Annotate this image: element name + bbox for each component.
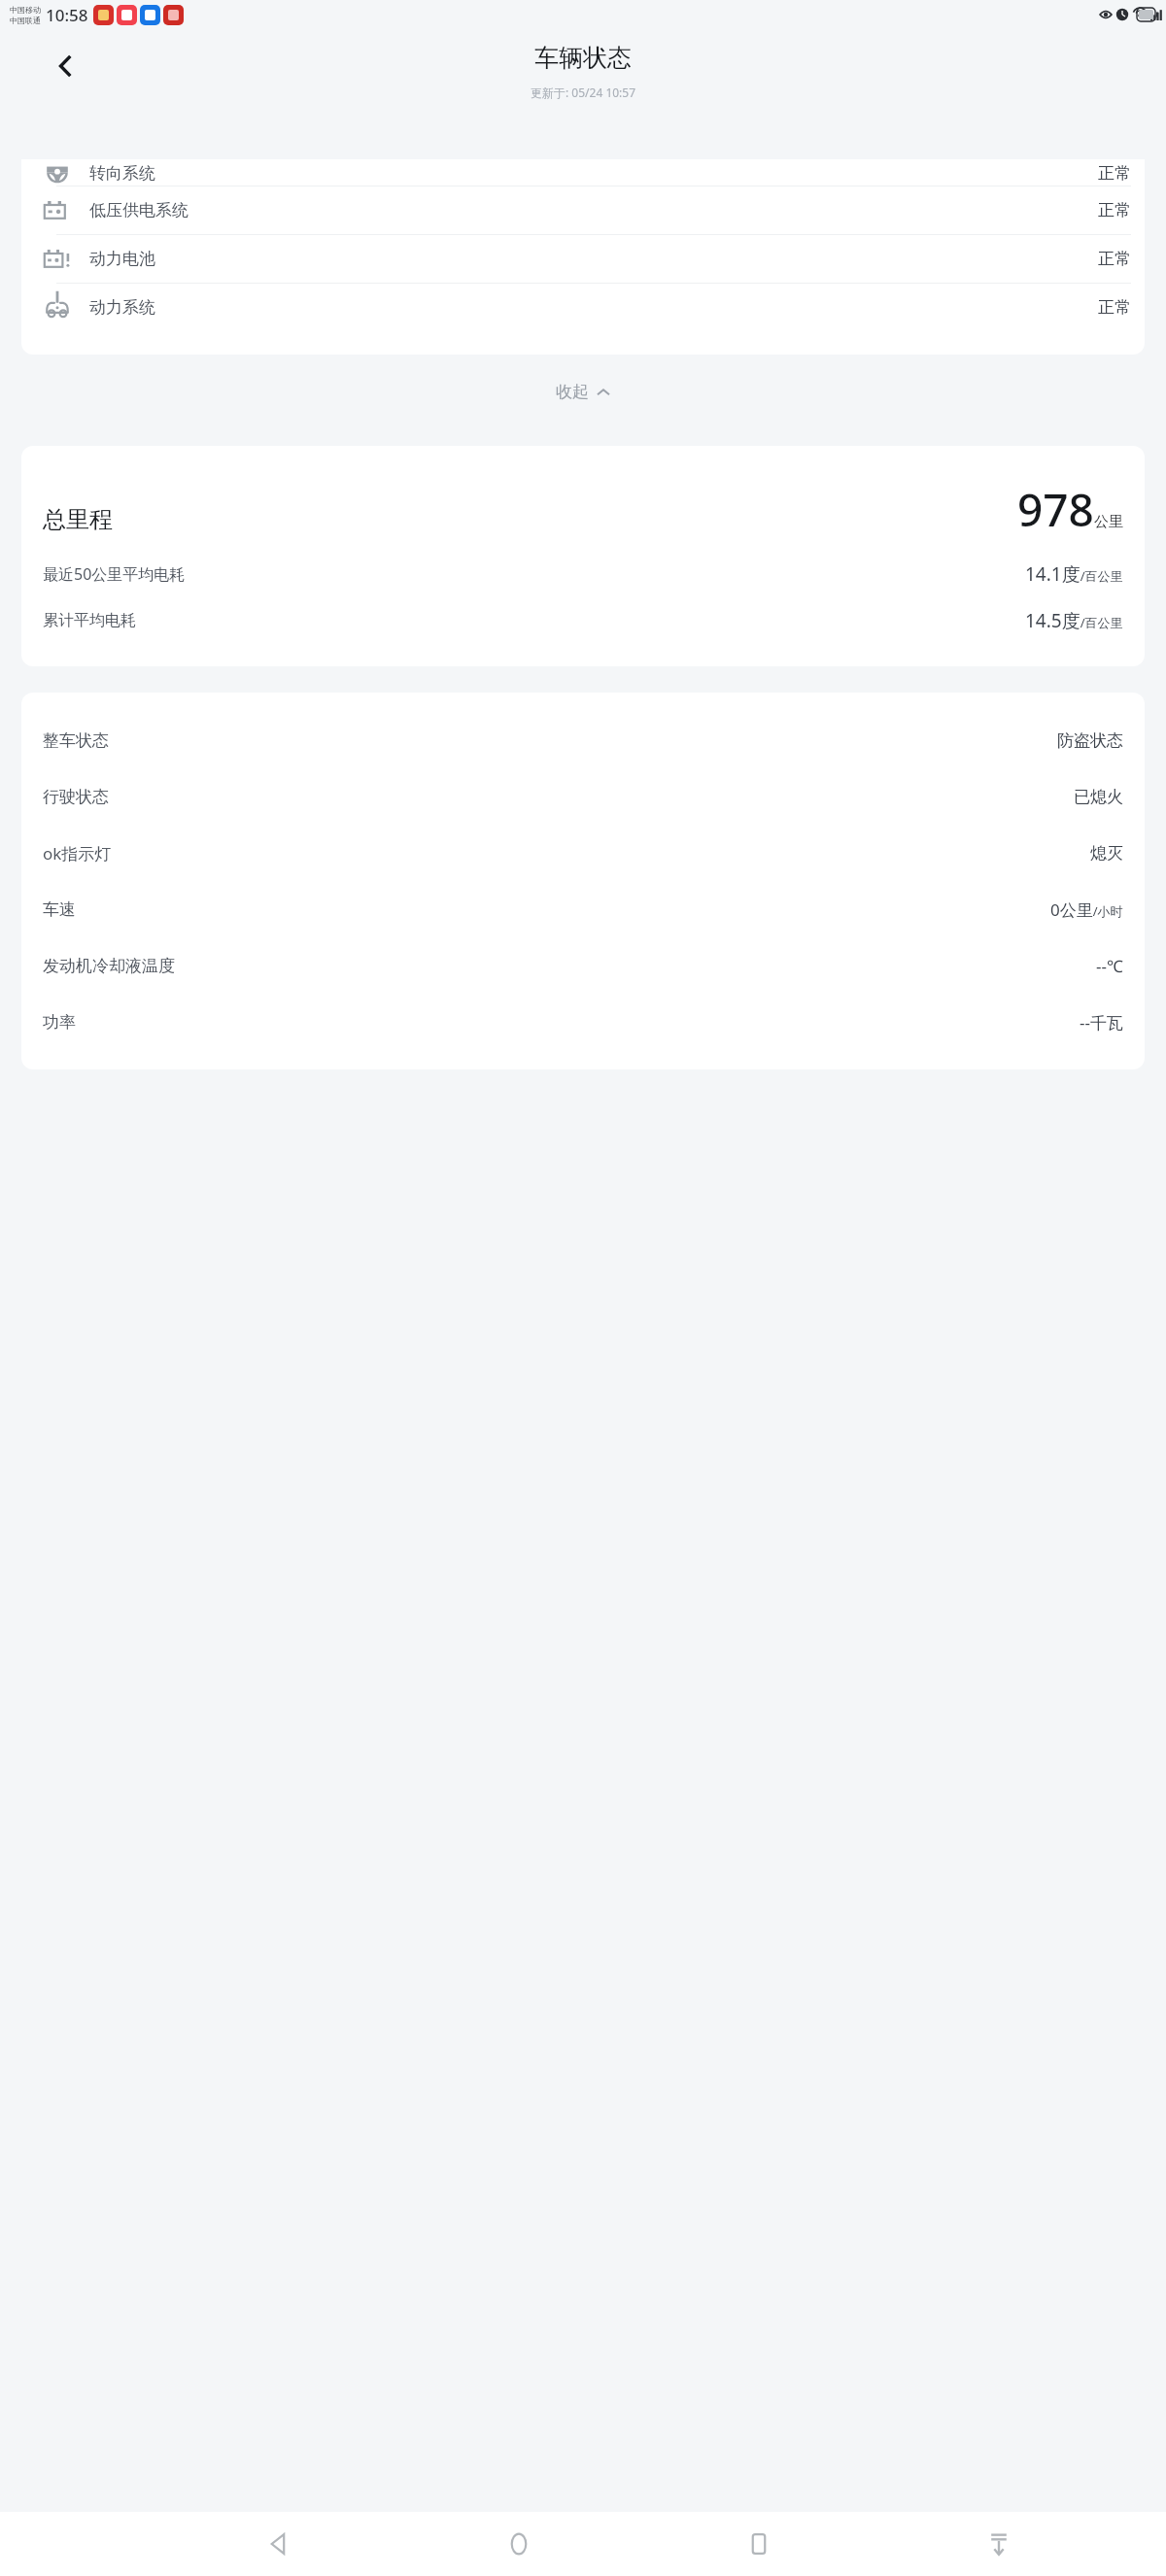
button[interactable]: 累计平均电耗 — [43, 608, 1123, 633]
button[interactable]: 动力系统 — [21, 284, 1145, 331]
staticText: 更新于: 05/24 10:57 — [531, 85, 636, 100]
staticText: 最近50公里平均电耗 — [43, 563, 186, 585]
staticText: 总里程 — [43, 505, 113, 534]
staticText: 动力系统 — [89, 297, 155, 318]
staticText: 整车状态 — [43, 730, 109, 751]
staticText: 14.1度/百公里 — [1025, 561, 1123, 587]
staticText: 10:58 — [46, 4, 88, 26]
staticText: --千瓦 — [1080, 1011, 1123, 1034]
staticText: 已熄火 — [1074, 787, 1123, 807]
button[interactable]: ok指示灯 — [43, 838, 1123, 867]
button[interactable]: Back — [39, 39, 93, 93]
staticText: 0公里/小时 — [1050, 898, 1123, 921]
staticText: 车速 — [43, 899, 76, 920]
staticText: 正常 — [1098, 249, 1131, 269]
staticText: 低压供电系统 — [89, 200, 189, 220]
button[interactable]: 车速 — [43, 895, 1123, 924]
button[interactable]: 收起 — [0, 355, 1166, 428]
staticText: 中国联通 — [10, 16, 41, 25]
staticText: 发动机冷却液温度 — [43, 956, 175, 976]
staticText: 正常 — [1098, 297, 1131, 318]
staticText: 功率 — [43, 1012, 76, 1033]
button[interactable]: 动力电池 — [21, 235, 1145, 283]
staticText: 转向系统 — [89, 163, 155, 184]
button[interactable]: 行驶状态 — [43, 782, 1123, 811]
button[interactable]: Home — [493, 2518, 545, 2570]
staticText: 14.5度/百公里 — [1025, 608, 1123, 633]
staticText: 中国移动 — [10, 5, 41, 15]
button[interactable]: 低压供电系统 — [21, 186, 1145, 234]
staticText: 收起 — [556, 382, 589, 402]
staticText: 累计平均电耗 — [43, 611, 136, 630]
button[interactable]: 最近50公里平均电耗 — [43, 561, 1123, 587]
staticText: 车辆状态 — [534, 43, 632, 73]
staticText: 正常 — [1098, 200, 1131, 220]
button[interactable]: 功率 — [43, 1007, 1123, 1036]
staticText: 行驶状态 — [43, 787, 109, 807]
staticText: 978公里 — [1017, 479, 1123, 540]
button[interactable]: 发动机冷却液温度 — [43, 951, 1123, 980]
staticText: 熄灭 — [1090, 843, 1123, 864]
button[interactable]: Hide keyboard — [973, 2518, 1025, 2570]
staticText: ok指示灯 — [43, 842, 112, 864]
button[interactable]: Back — [253, 2518, 305, 2570]
staticText: 正常 — [1098, 163, 1131, 184]
button[interactable]: 转向系统 — [21, 159, 1145, 186]
staticText: 动力电池 — [89, 249, 155, 269]
staticText: --℃ — [1096, 955, 1123, 977]
staticText: 防盗状态 — [1057, 730, 1123, 751]
button[interactable]: Recents — [733, 2518, 785, 2570]
button[interactable]: 整车状态 — [43, 726, 1123, 755]
